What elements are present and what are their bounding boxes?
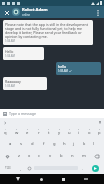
staticText: . <box>82 166 83 171</box>
staticText: 5 <box>48 128 50 130</box>
staticText: 4 <box>38 128 40 130</box>
staticText: t <box>48 130 50 136</box>
staticText: 8 <box>78 128 80 130</box>
staticText: k <box>83 141 86 147</box>
staticText: j <box>73 141 75 147</box>
button[interactable]: Back <box>13 174 23 184</box>
button[interactable]: hello <box>56 62 101 75</box>
staticText: Hello <box>5 49 14 54</box>
staticText: ?123 <box>5 166 11 170</box>
button[interactable]: 1 <box>0 126 11 138</box>
staticText: e <box>26 130 29 136</box>
staticText: 1:05 AM <box>5 84 15 88</box>
staticText: Type a message <box>9 111 36 116</box>
staticText: p <box>98 130 101 136</box>
button[interactable]: b <box>56 150 67 162</box>
staticText: s <box>20 141 23 147</box>
staticText: 1:04 AM <box>5 54 15 58</box>
staticText: 1:05 AM <box>58 69 68 73</box>
button[interactable]: 2 <box>11 126 22 138</box>
button[interactable]: Shift <box>0 150 14 162</box>
button[interactable]: v <box>45 150 56 162</box>
button[interactable]: Recents <box>58 174 68 184</box>
staticText: y <box>58 130 61 136</box>
button[interactable]: Home <box>36 174 46 184</box>
button[interactable]: Backspace <box>89 150 104 162</box>
button[interactable]: 5 <box>44 126 54 138</box>
staticText: 1 <box>5 128 7 130</box>
button[interactable]: k <box>79 138 89 150</box>
staticText: n <box>71 153 74 159</box>
staticText: hello <box>58 64 67 69</box>
staticText: Robot Adam <box>22 7 48 13</box>
staticText: 2 <box>16 128 18 130</box>
staticText: r <box>38 130 40 136</box>
staticText: i <box>78 130 80 136</box>
button[interactable]: Hello <box>3 47 44 60</box>
staticText: c <box>38 153 41 159</box>
staticText: 3 <box>27 128 29 130</box>
button[interactable]: z <box>14 150 24 162</box>
staticText: h <box>63 141 66 147</box>
button[interactable]: Emoji <box>25 162 34 174</box>
button[interactable]: x <box>24 150 34 162</box>
button[interactable]: Type a message <box>0 109 104 118</box>
staticText: d <box>31 141 34 147</box>
staticText: o <box>88 130 91 136</box>
staticText: Raaaaaay <box>5 79 21 84</box>
button[interactable]: 8 <box>74 126 84 138</box>
staticText: 7 <box>69 128 71 130</box>
button[interactable]: 6 <box>54 126 64 138</box>
button[interactable]: Send <box>92 165 99 172</box>
button[interactable]: s <box>16 138 27 150</box>
button[interactable]: Robot Adam <box>22 7 93 17</box>
staticText: w <box>15 130 19 136</box>
button[interactable]: 9 <box>84 126 94 138</box>
button[interactable]: Hide keyboard <box>81 174 91 184</box>
button[interactable]: Voice input <box>97 120 102 125</box>
staticText: online <box>22 13 31 17</box>
staticText: 9 <box>89 128 91 130</box>
button[interactable]: a <box>5 138 16 150</box>
button[interactable]: Raaaaaay <box>3 77 47 90</box>
staticText: Please note that the app is still in the… <box>5 22 91 39</box>
button[interactable]: m <box>78 150 89 162</box>
button[interactable]: ?123 <box>0 162 16 174</box>
button[interactable]: l <box>89 138 99 150</box>
staticText: q <box>4 130 7 136</box>
button[interactable]: Close <box>2 8 11 17</box>
staticText: 1:04 AM <box>5 39 15 43</box>
staticText: x <box>28 153 31 159</box>
button[interactable]: 4 <box>33 126 44 138</box>
button[interactable]: c <box>34 150 45 162</box>
staticText: u <box>68 130 71 136</box>
button[interactable]: Please note that the app is still in the… <box>3 20 93 45</box>
staticText: f <box>43 141 45 147</box>
button[interactable]: Expand toolbar <box>2 120 7 125</box>
staticText: b <box>60 153 63 159</box>
button[interactable]: 7 <box>64 126 74 138</box>
button[interactable]: n <box>67 150 78 162</box>
staticText: a <box>9 141 12 147</box>
button[interactable]: 3 <box>22 126 33 138</box>
button[interactable]: 0 <box>94 126 104 138</box>
button[interactable]: j <box>69 138 79 150</box>
staticText: g <box>53 141 56 147</box>
button[interactable]: More options <box>93 8 102 17</box>
staticText: z <box>18 153 20 159</box>
button[interactable]: h <box>59 138 69 150</box>
button[interactable]: , <box>16 162 25 174</box>
staticText: , <box>20 166 21 171</box>
staticText: v <box>49 153 52 159</box>
staticText: 6 <box>59 128 61 130</box>
button[interactable]: f <box>38 138 49 150</box>
staticText: l <box>93 141 95 147</box>
button[interactable]: d <box>27 138 38 150</box>
staticText: m <box>82 153 86 159</box>
button[interactable]: g <box>49 138 59 150</box>
staticText: 0 <box>99 128 101 130</box>
